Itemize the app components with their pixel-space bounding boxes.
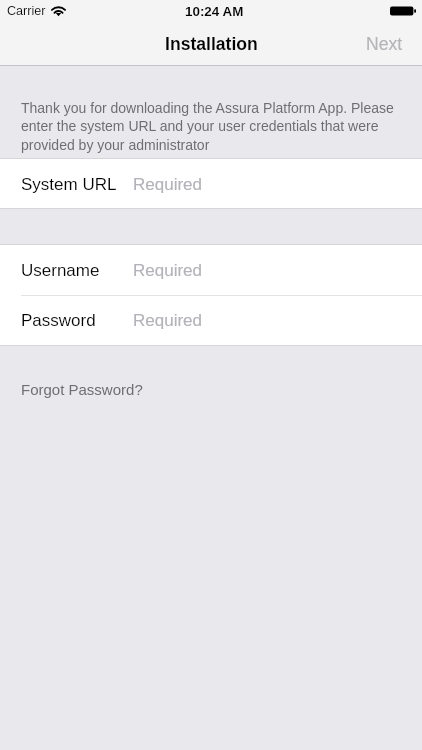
staticText: Thank you for downloading the Assura Pla… bbox=[21, 100, 406, 153]
staticText: Required bbox=[133, 261, 202, 280]
button[interactable]: Username bbox=[0, 245, 422, 295]
staticText: Required bbox=[133, 175, 202, 194]
staticText: Username bbox=[21, 261, 100, 280]
staticText: Required bbox=[133, 311, 202, 330]
staticText: Forgot Password? bbox=[21, 381, 143, 398]
other: Wi-Fi signal bbox=[52, 6, 65, 16]
staticText: Carrier bbox=[7, 4, 46, 18]
staticText: System URL bbox=[21, 175, 117, 194]
button[interactable]: Forgot Password? bbox=[13, 376, 151, 403]
staticText: 10:24 AM bbox=[185, 4, 244, 19]
staticText: Next bbox=[366, 34, 403, 54]
button[interactable]: Next bbox=[345, 24, 422, 64]
staticText: Installation bbox=[165, 34, 258, 54]
staticText: Password bbox=[21, 311, 96, 330]
button[interactable]: System URL bbox=[0, 159, 422, 209]
other: Battery full bbox=[390, 6, 416, 16]
button[interactable]: Password bbox=[0, 295, 422, 345]
